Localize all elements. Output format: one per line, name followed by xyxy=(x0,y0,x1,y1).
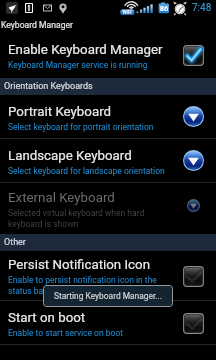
staticText: Landscape Keyboard xyxy=(8,148,132,164)
staticText: Selected virtual keyboard when hard keyb… xyxy=(8,208,177,229)
staticText: Start on boot xyxy=(8,310,86,326)
staticText: 86 xyxy=(159,4,169,13)
button[interactable]: Landscape Keyboard xyxy=(0,139,216,182)
staticText: Persist Notification Icon xyxy=(8,257,150,273)
staticText: Keyboard Manager service is running xyxy=(8,60,148,70)
button[interactable]: Starting Keyboard Manager... xyxy=(43,285,173,307)
button[interactable]: Portrait Keyboard xyxy=(0,95,216,138)
staticText: WIFI xyxy=(120,10,134,15)
button[interactable]: Start on boot xyxy=(0,301,216,344)
button[interactable]: Choose keyboard xyxy=(183,106,204,127)
button[interactable]: Choose keyboard xyxy=(183,150,204,171)
button[interactable]: Toggle setting xyxy=(183,313,204,334)
staticText: External Keyboard xyxy=(8,190,115,206)
button[interactable]: Toggle setting xyxy=(183,266,204,287)
button[interactable]: Toggle setting xyxy=(183,45,204,66)
button[interactable]: External Keyboard xyxy=(0,183,216,234)
button[interactable]: Choose keyboard xyxy=(183,195,204,216)
staticText: Other xyxy=(4,237,26,248)
button[interactable]: Enable Keyboard Manager xyxy=(0,31,216,78)
staticText: Orientation Keyboards xyxy=(4,81,93,92)
staticText: Keyboard Manager xyxy=(1,20,73,30)
staticText: Select keyboard for portrait orientation xyxy=(8,122,154,132)
staticText: Starting Keyboard Manager... xyxy=(54,291,162,301)
staticText: Select keyboard for landscape orientatio… xyxy=(8,166,165,176)
staticText: Enable to persist notification icon in t… xyxy=(8,275,177,296)
staticText: Enable to start service on boot xyxy=(8,328,124,338)
staticText: Portrait Keyboard xyxy=(8,104,112,120)
staticText: Enable Keyboard Manager xyxy=(8,42,163,58)
staticText: 7:48 xyxy=(192,2,212,14)
button[interactable]: Persist Notification Icon xyxy=(0,251,216,300)
